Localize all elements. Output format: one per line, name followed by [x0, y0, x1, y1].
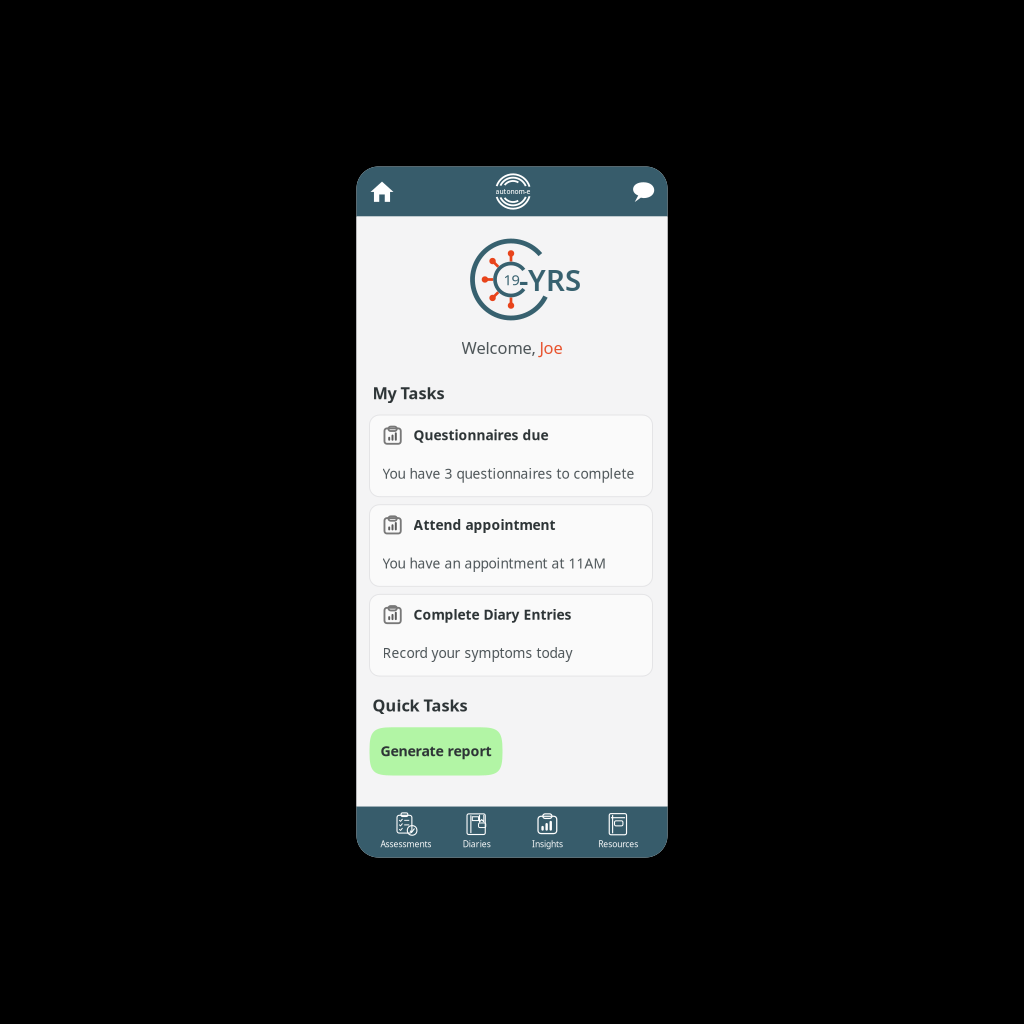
staticText: 19: [503, 270, 519, 289]
button[interactable]: Complete Diary Entries: [369, 594, 652, 676]
button[interactable]: Diaries: [441, 807, 512, 857]
staticText: Insights: [532, 838, 563, 850]
staticText: You have an appointment at 11AM: [382, 554, 605, 572]
staticText: autonom-e: [495, 187, 530, 196]
staticText: You have 3 questionnaires to complete: [382, 464, 634, 483]
button[interactable]: Generate report: [369, 727, 502, 775]
button[interactable]: Attend appointment: [369, 505, 652, 586]
button[interactable]: Questionnaires due: [369, 415, 652, 497]
button[interactable]: Home: [356, 166, 405, 216]
staticText: Assessments: [380, 838, 431, 850]
staticText: -YRS: [519, 260, 581, 299]
staticText: Welcome,: [461, 336, 539, 359]
staticText: Record your symptoms today: [382, 643, 572, 662]
button[interactable]: Messages: [620, 166, 667, 216]
button[interactable]: Assessments: [370, 807, 441, 857]
button[interactable]: Resources: [583, 807, 654, 857]
staticText: Diaries: [463, 838, 491, 850]
staticText: My Tasks: [372, 382, 444, 404]
staticText: Attend appointment: [413, 515, 555, 534]
button[interactable]: Insights: [512, 807, 583, 857]
staticText: Questionnaires due: [413, 426, 548, 444]
staticText: Quick Tasks: [372, 694, 467, 716]
staticText: Resources: [598, 838, 638, 850]
staticText: Joe: [539, 336, 562, 359]
staticText: Complete Diary Entries: [413, 605, 571, 624]
staticText: Generate report: [380, 741, 491, 760]
